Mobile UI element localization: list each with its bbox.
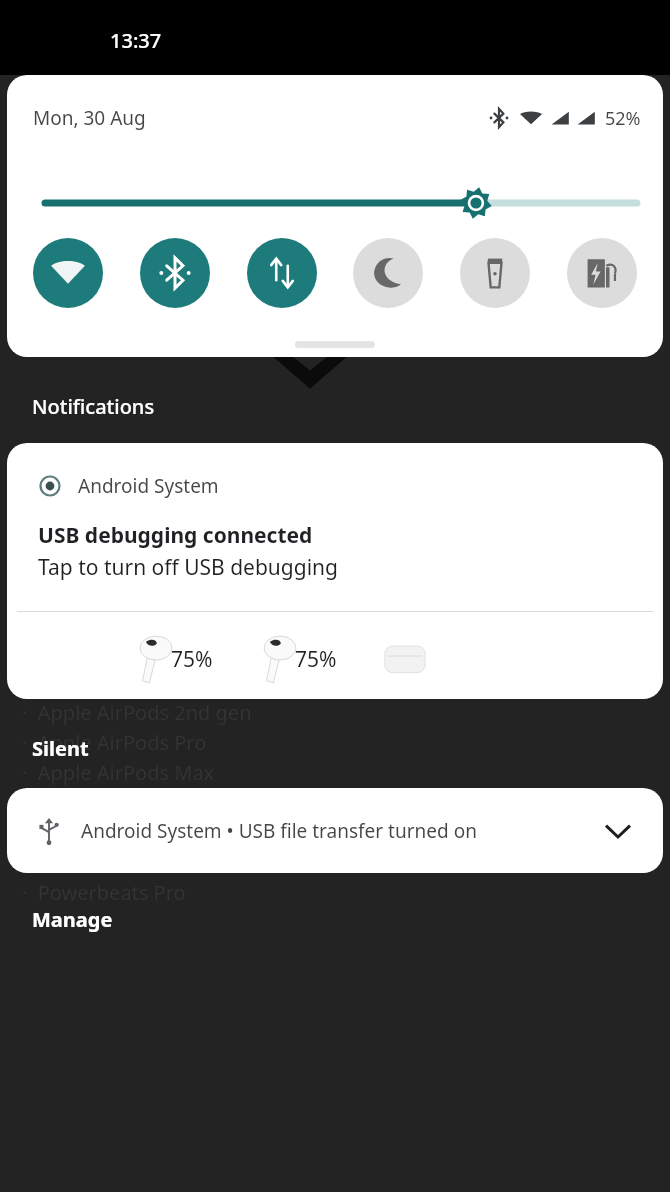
staticText: · Apple AirPods Pro	[22, 729, 207, 756]
staticText: · Apple AirPods 2nd gen	[22, 699, 252, 726]
staticText: · Apple AirPods Max	[22, 759, 215, 786]
staticText: Android System	[78, 473, 219, 499]
staticText: 13:37	[110, 27, 162, 54]
staticText: · Beats Studio 3	[22, 819, 173, 846]
staticText: Notifications	[32, 393, 155, 420]
button[interactable]: Android System • USB file transfer turne…	[7, 788, 663, 873]
button[interactable]: Mobile data	[247, 238, 317, 308]
button[interactable]: Battery saver	[567, 238, 637, 308]
staticText: · Powerbeats Pro	[22, 879, 186, 906]
staticText: Tap to turn off USB debugging	[38, 553, 338, 582]
staticText: Android System • USB file transfer turne…	[81, 818, 477, 844]
staticText: Mon, 30 Aug	[33, 105, 146, 131]
staticText: · Powerbeats 3	[22, 849, 166, 876]
button[interactable]: Manage	[32, 906, 113, 933]
staticText: USB debugging connected	[38, 521, 313, 550]
button[interactable]: Expand notification	[599, 812, 637, 850]
staticText: 52%	[605, 106, 641, 131]
button[interactable]: Bluetooth	[140, 238, 210, 308]
button[interactable]: Wi-Fi	[33, 238, 103, 308]
button[interactable]	[7, 180, 663, 226]
staticText: Silent	[32, 735, 89, 762]
staticText: 75%	[295, 645, 337, 674]
button[interactable]: Flashlight	[460, 238, 530, 308]
button[interactable]: Do not disturb	[353, 238, 423, 308]
button[interactable]: Android System	[7, 443, 663, 699]
staticText: 75%	[171, 645, 213, 674]
